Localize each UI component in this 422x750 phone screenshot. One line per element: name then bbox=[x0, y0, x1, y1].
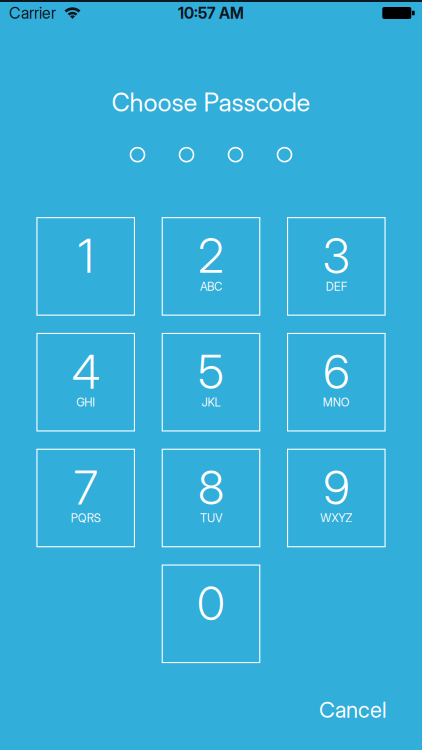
staticText: 6 bbox=[323, 343, 349, 400]
staticText: Choose Passcode bbox=[111, 87, 310, 118]
button[interactable]: Cancel bbox=[319, 696, 387, 723]
button[interactable]: 6 bbox=[287, 333, 385, 431]
button[interactable]: 5 bbox=[162, 333, 260, 431]
button[interactable]: 8 bbox=[162, 449, 260, 547]
staticText: 9 bbox=[323, 459, 349, 516]
staticText: JKL bbox=[201, 395, 220, 409]
button[interactable]: 9 bbox=[287, 449, 385, 547]
staticText: 7 bbox=[74, 459, 98, 516]
button[interactable]: 4 bbox=[37, 333, 134, 431]
staticText: 2 bbox=[198, 228, 224, 284]
staticText: 4 bbox=[72, 343, 100, 400]
staticText: ABC bbox=[200, 280, 222, 293]
staticText: 10:57 AM bbox=[178, 4, 244, 22]
staticText: 8 bbox=[198, 459, 224, 516]
button[interactable]: 7 bbox=[37, 449, 134, 547]
staticText: TUV bbox=[200, 511, 222, 525]
button[interactable]: 3 bbox=[287, 218, 385, 315]
staticText: 0 bbox=[197, 575, 225, 632]
button[interactable]: 0 bbox=[162, 565, 260, 663]
staticText: MNO bbox=[323, 395, 350, 409]
button[interactable]: 2 bbox=[162, 218, 260, 315]
staticText: Cancel bbox=[319, 696, 387, 723]
staticText: 1 bbox=[78, 228, 94, 284]
staticText: 5 bbox=[198, 343, 224, 400]
staticText: WXYZ bbox=[320, 511, 352, 525]
staticText: 3 bbox=[323, 228, 350, 284]
staticText: Carrier bbox=[9, 3, 56, 23]
staticText: DEF bbox=[326, 280, 347, 293]
button[interactable]: 1 bbox=[37, 218, 134, 315]
staticText: PQRS bbox=[71, 511, 101, 525]
staticText: GHI bbox=[76, 395, 95, 409]
